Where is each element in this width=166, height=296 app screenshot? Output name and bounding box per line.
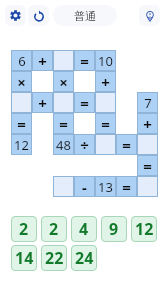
- button[interactable]: =: [74, 92, 95, 113]
- staticText: 2: [19, 218, 29, 240]
- button[interactable]: 12: [131, 216, 157, 242]
- staticText: ÷: [80, 135, 89, 155]
- button[interactable]: 24: [71, 245, 97, 271]
- button[interactable]: 10: [95, 50, 116, 71]
- button[interactable]: 7: [137, 92, 158, 113]
- staticText: =: [80, 51, 89, 71]
- staticText: =: [59, 114, 68, 134]
- button[interactable]: [95, 92, 116, 113]
- staticText: +: [38, 93, 47, 113]
- button[interactable]: +: [95, 71, 116, 92]
- button[interactable]: 22: [41, 245, 67, 271]
- button[interactable]: [137, 134, 158, 155]
- staticText: 7: [144, 94, 152, 112]
- button[interactable]: +: [32, 50, 53, 71]
- button[interactable]: =: [74, 50, 95, 71]
- staticText: +: [101, 72, 110, 92]
- button[interactable]: 14: [11, 245, 37, 271]
- staticText: 6: [18, 52, 26, 70]
- staticText: 4: [79, 218, 89, 240]
- button[interactable]: [95, 134, 116, 155]
- staticText: +: [38, 51, 47, 71]
- button[interactable]: Settings: [5, 5, 26, 26]
- staticText: 22: [45, 247, 64, 269]
- button[interactable]: [137, 176, 158, 197]
- button[interactable]: +: [137, 113, 158, 134]
- button[interactable]: -: [74, 176, 95, 197]
- staticText: ×: [59, 72, 68, 92]
- staticText: -: [82, 177, 87, 197]
- button[interactable]: 4: [71, 216, 97, 242]
- button[interactable]: ×: [11, 71, 32, 92]
- staticText: =: [122, 135, 131, 155]
- button[interactable]: 9: [101, 216, 127, 242]
- staticText: 48: [56, 136, 71, 154]
- staticText: 9: [109, 218, 119, 240]
- staticText: =: [143, 156, 152, 176]
- button[interactable]: [53, 176, 74, 197]
- button[interactable]: =: [53, 113, 74, 134]
- button[interactable]: =: [95, 113, 116, 134]
- button[interactable]: 48: [53, 134, 74, 155]
- button[interactable]: +: [32, 92, 53, 113]
- staticText: =: [80, 93, 89, 113]
- button[interactable]: 2: [41, 216, 67, 242]
- button[interactable]: =: [137, 155, 158, 176]
- button[interactable]: 12: [11, 134, 32, 155]
- staticText: =: [17, 114, 26, 134]
- staticText: 14: [15, 247, 34, 269]
- button[interactable]: 6: [11, 50, 32, 71]
- staticText: 12: [135, 218, 154, 240]
- staticText: =: [101, 114, 110, 134]
- button[interactable]: ×: [53, 71, 74, 92]
- staticText: 普通: [74, 9, 96, 23]
- staticText: 10: [98, 52, 113, 70]
- staticText: 13: [98, 178, 113, 196]
- button[interactable]: Refresh: [28, 5, 49, 26]
- button[interactable]: Hint: [139, 5, 160, 26]
- staticText: 12: [14, 136, 29, 154]
- button[interactable]: =: [11, 113, 32, 134]
- button[interactable]: ÷: [74, 134, 95, 155]
- button[interactable]: 2: [11, 216, 37, 242]
- button[interactable]: 普通: [53, 5, 117, 26]
- button[interactable]: [11, 92, 32, 113]
- staticText: =: [122, 177, 131, 197]
- staticText: 2: [49, 218, 59, 240]
- button[interactable]: =: [116, 134, 137, 155]
- button[interactable]: [53, 92, 74, 113]
- staticText: 24: [75, 247, 94, 269]
- staticText: +: [143, 114, 152, 134]
- button[interactable]: 13: [95, 176, 116, 197]
- button[interactable]: =: [116, 176, 137, 197]
- button[interactable]: [53, 50, 74, 71]
- staticText: ×: [17, 72, 26, 92]
